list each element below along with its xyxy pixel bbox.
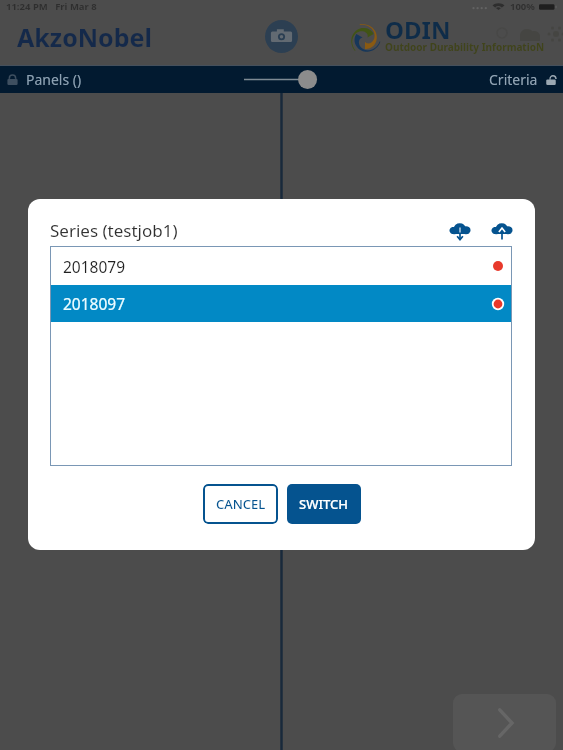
staticText: 2018079 <box>63 256 126 277</box>
button[interactable]: 2018097 <box>51 285 511 322</box>
button[interactable]: 2018079 <box>51 247 511 285</box>
button[interactable]: Upload <box>487 215 517 245</box>
button[interactable]: Camera <box>265 20 298 53</box>
staticText: Series (testjob1) <box>50 219 178 242</box>
button[interactable]: Criteria <box>489 70 558 89</box>
staticText: AkzoNobel <box>17 20 152 54</box>
button[interactable]: CANCEL <box>203 484 278 524</box>
staticText: CANCEL <box>216 495 266 513</box>
staticText: 11:24 PM Fri Mar 8 <box>6 0 97 13</box>
button[interactable]: Panels () <box>5 70 82 89</box>
staticText: SWITCH <box>299 495 349 513</box>
button[interactable]: SWITCH <box>287 484 361 524</box>
staticText: 100% <box>510 0 535 13</box>
staticText: Criteria <box>489 70 538 89</box>
staticText: Panels () <box>26 70 82 89</box>
staticText: ODIN <box>385 13 451 46</box>
staticText: 2018097 <box>63 293 126 314</box>
staticText: Outdoor Durability InformatioN <box>385 40 545 54</box>
button[interactable]: Download <box>445 215 475 245</box>
